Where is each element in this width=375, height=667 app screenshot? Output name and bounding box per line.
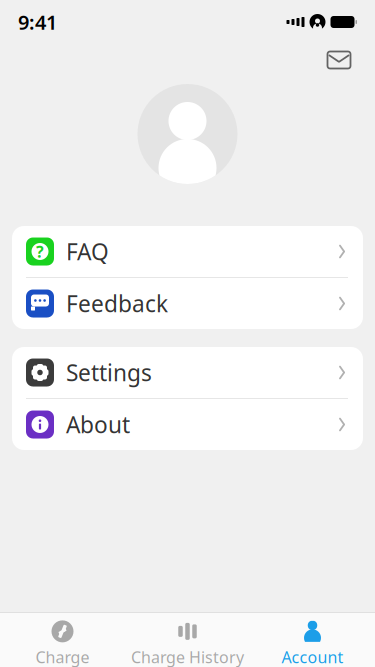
staticText: ? — [36, 241, 44, 262]
staticText: Settings — [66, 357, 152, 387]
button[interactable]: Settings — [12, 347, 363, 398]
button[interactable]: Messages — [317, 44, 361, 76]
staticText: Charge History — [131, 646, 244, 667]
button[interactable]: Feedback — [12, 278, 363, 329]
button[interactable]: ? — [12, 226, 363, 277]
staticText: About — [66, 409, 130, 439]
staticText: Account — [281, 646, 343, 667]
button[interactable]: Account — [250, 620, 375, 667]
button[interactable]: Charge — [0, 620, 125, 667]
button[interactable]: Charge History — [125, 620, 250, 667]
staticText: Feedback — [66, 288, 168, 318]
button[interactable]: About — [12, 399, 363, 450]
staticText: 9:41 — [18, 9, 57, 35]
staticText: FAQ — [66, 236, 109, 266]
staticText: Charge — [35, 646, 89, 667]
